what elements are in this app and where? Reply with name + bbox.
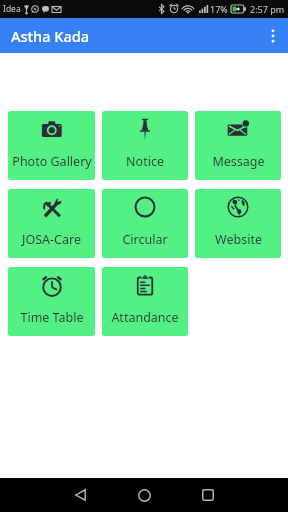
staticText: Message (212, 153, 265, 170)
staticText: Photo Gallery (12, 153, 92, 170)
staticText: Idea (3, 3, 21, 15)
button[interactable]: Notice (102, 111, 188, 180)
button[interactable]: Home (127, 478, 161, 512)
button[interactable]: Back (63, 478, 97, 512)
staticText: JOSA-Care (22, 231, 81, 248)
button[interactable]: Time Table (8, 267, 95, 336)
button[interactable]: More options (253, 18, 288, 53)
staticText: Circular (122, 231, 168, 248)
staticText: Attandance (111, 309, 179, 326)
button[interactable]: Website (195, 189, 281, 258)
button[interactable]: Circular (102, 189, 188, 258)
button[interactable]: Photo Gallery (8, 111, 95, 180)
staticText: Notice (126, 153, 164, 170)
button[interactable]: Message (195, 111, 281, 180)
button[interactable]: Recent apps (191, 478, 225, 512)
staticText: Astha Kada (11, 26, 89, 46)
button[interactable]: Attandance (102, 267, 188, 336)
staticText: Website (215, 231, 262, 248)
staticText: 17% (210, 3, 228, 15)
staticText: 2:57 pm (250, 3, 285, 15)
button[interactable]: JOSA-Care (8, 189, 95, 258)
staticText: Time Table (20, 309, 84, 326)
